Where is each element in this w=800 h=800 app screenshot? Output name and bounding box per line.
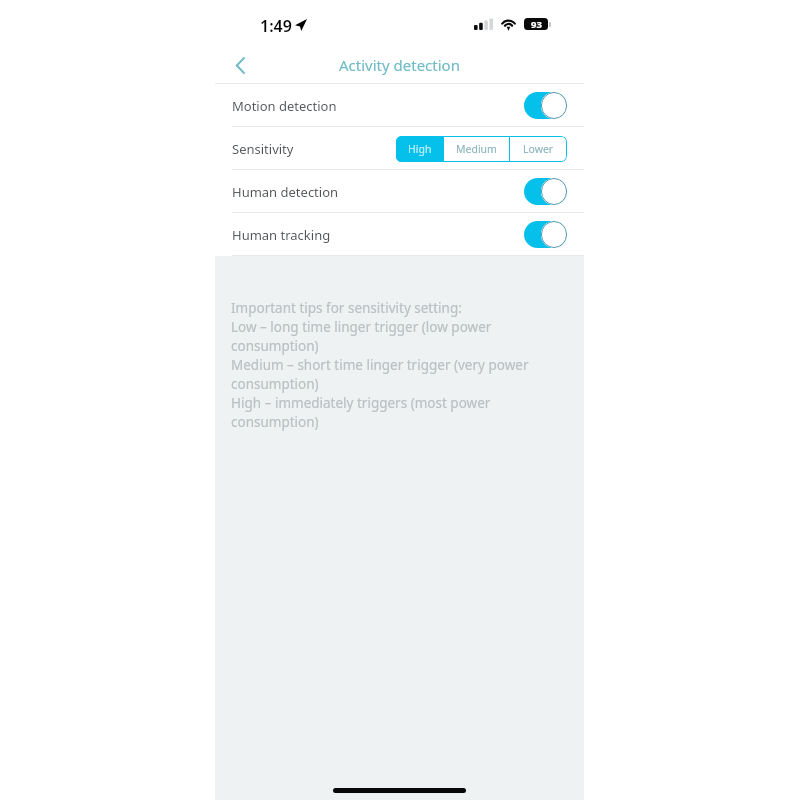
button[interactable]: Lower xyxy=(510,136,567,162)
button[interactable]: Motion detection on xyxy=(524,92,567,119)
button[interactable]: High xyxy=(396,136,443,162)
staticText: Motion detection xyxy=(232,97,337,115)
button[interactable]: Human tracking xyxy=(215,213,584,256)
staticText: Sensitivity xyxy=(232,140,294,158)
button[interactable]: Human detection on xyxy=(524,178,567,205)
button[interactable]: Motion detection xyxy=(215,84,584,127)
staticText: Medium xyxy=(456,142,497,156)
staticText: 93 xyxy=(531,18,542,30)
staticText: High xyxy=(408,142,432,156)
button[interactable]: Medium xyxy=(444,136,509,162)
staticText: Human detection xyxy=(232,183,339,201)
staticText: Human tracking xyxy=(232,226,331,244)
staticText: Important tips for sensitivity setting: … xyxy=(231,299,529,431)
button[interactable]: Human detection xyxy=(215,170,584,213)
staticText: Lower xyxy=(523,142,554,156)
staticText: Activity detection xyxy=(339,55,460,75)
staticText: 1:49 xyxy=(260,15,292,37)
button[interactable]: Back xyxy=(223,48,257,82)
button[interactable]: Human tracking on xyxy=(524,221,567,248)
